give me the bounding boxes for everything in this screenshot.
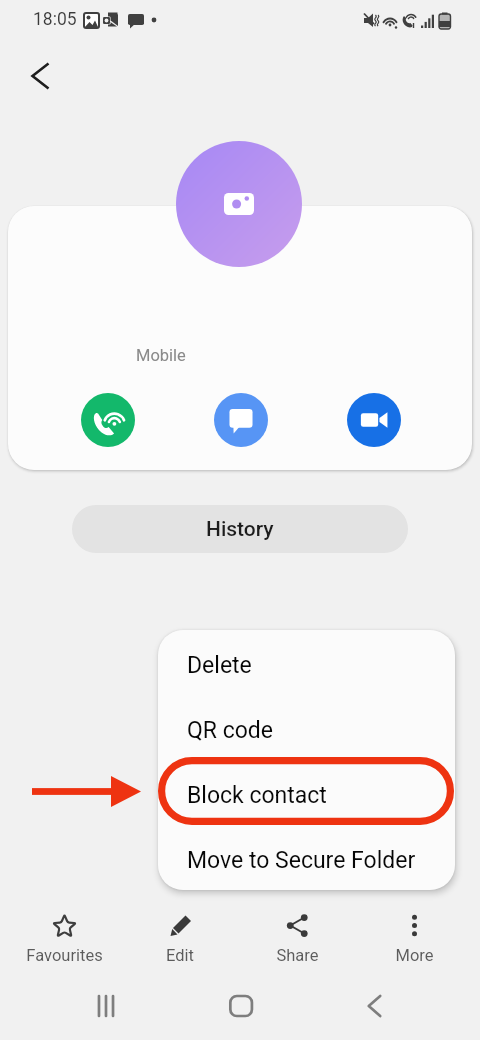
button[interactable]: Back bbox=[16, 52, 64, 100]
staticText: 18:05 bbox=[33, 9, 77, 30]
button[interactable]: Home bbox=[201, 982, 281, 1030]
button[interactable]: Back bbox=[335, 982, 415, 1030]
button[interactable]: Delete bbox=[158, 633, 455, 698]
button[interactable]: Edit bbox=[122, 913, 238, 965]
button[interactable]: QR code bbox=[158, 698, 455, 763]
staticText: More bbox=[395, 946, 434, 965]
button[interactable]: Change contact photo bbox=[176, 141, 302, 267]
staticText: History bbox=[206, 517, 274, 542]
button[interactable]: Recents bbox=[66, 982, 146, 1030]
button[interactable]: Call bbox=[81, 393, 135, 447]
button[interactable]: Favourites bbox=[6, 913, 122, 965]
staticText: Delete bbox=[187, 652, 252, 679]
button[interactable]: Block contact bbox=[158, 763, 455, 828]
staticText: Move to Secure Folder bbox=[187, 847, 416, 874]
button[interactable]: Message bbox=[214, 393, 268, 447]
staticText: Mobile bbox=[136, 346, 186, 365]
staticText: Block contact bbox=[187, 782, 327, 809]
staticText: Edit bbox=[166, 946, 194, 965]
button[interactable]: History bbox=[72, 505, 408, 553]
button[interactable]: Video call bbox=[347, 393, 401, 447]
staticText: QR code bbox=[187, 717, 274, 744]
button[interactable]: Move to Secure Folder bbox=[158, 828, 455, 890]
button[interactable]: Share bbox=[239, 913, 355, 965]
button[interactable]: More bbox=[356, 913, 472, 965]
staticText: Share bbox=[276, 946, 319, 965]
staticText: Favourites bbox=[26, 946, 103, 965]
